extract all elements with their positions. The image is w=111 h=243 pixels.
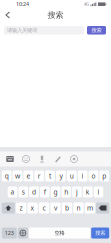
button[interactable]: h [61, 186, 71, 197]
button[interactable]: Voice input [34, 151, 50, 166]
button[interactable]: Keyboard layout [2, 151, 18, 166]
staticText: j [76, 188, 78, 196]
button[interactable]: z [16, 202, 26, 213]
staticText: g [53, 188, 57, 196]
button[interactable]: n [73, 202, 84, 213]
staticText: k [86, 188, 90, 196]
staticText: r [38, 172, 41, 180]
button[interactable]: r [34, 170, 44, 181]
button[interactable]: s [18, 186, 28, 197]
staticText: u [70, 172, 74, 180]
staticText: i [82, 172, 84, 180]
staticText: 10:24 [16, 0, 29, 8]
button[interactable]: y [56, 170, 66, 181]
button[interactable]: 搜索 [87, 26, 106, 34]
staticText: y [59, 172, 62, 180]
staticText: w [15, 172, 20, 180]
button[interactable]: v [50, 202, 61, 213]
button[interactable]: q [2, 170, 12, 181]
staticText: m [87, 204, 93, 212]
button[interactable]: i [78, 170, 87, 181]
button[interactable]: d [29, 186, 39, 197]
button[interactable]: m [85, 202, 95, 213]
button[interactable]: Shift [2, 202, 15, 213]
staticText: d [32, 188, 36, 196]
button[interactable]: f [40, 186, 49, 197]
staticText: q [5, 172, 9, 180]
button[interactable]: g [51, 186, 60, 197]
button[interactable]: k [83, 186, 92, 197]
staticText: f [44, 188, 46, 196]
staticText: b [65, 204, 69, 212]
button[interactable]: b [62, 202, 72, 213]
staticText: 请输入关键词 [7, 27, 37, 34]
button[interactable]: w [13, 170, 22, 181]
staticText: n [76, 204, 80, 212]
staticText: c [42, 204, 45, 212]
staticText: 搜索 [47, 10, 63, 20]
staticText: 123 [5, 229, 14, 237]
button[interactable]: Emoji [18, 151, 34, 166]
button[interactable]: Switch keyboard [18, 227, 28, 238]
button[interactable]: Handwriting [50, 151, 66, 166]
staticText: p [102, 172, 106, 180]
button[interactable]: e [23, 170, 33, 181]
button[interactable]: x [27, 202, 38, 213]
button[interactable]: l [94, 186, 103, 197]
staticText: z [20, 204, 23, 212]
button[interactable]: a [8, 186, 17, 197]
button[interactable]: 搜索 [91, 227, 109, 238]
staticText: 搜索 [95, 230, 105, 236]
staticText: a [10, 188, 14, 196]
button[interactable]: j [72, 186, 82, 197]
button[interactable]: Back [0, 8, 16, 22]
staticText: t [49, 172, 51, 180]
button[interactable]: Delete [96, 202, 109, 213]
button[interactable]: t [45, 170, 55, 181]
staticText: e [26, 172, 30, 180]
staticText: 4G [84, 1, 89, 7]
staticText: x [31, 204, 35, 212]
button[interactable]: c [39, 202, 49, 213]
staticText: l [97, 188, 99, 196]
button[interactable]: u [67, 170, 77, 181]
button[interactable]: o [89, 170, 98, 181]
staticText: s [22, 188, 25, 196]
staticText: o [91, 172, 95, 180]
staticText: v [54, 204, 57, 212]
staticText: h [64, 188, 68, 196]
button[interactable]: 123 [2, 227, 17, 238]
button[interactable]: 空格 [29, 227, 90, 238]
staticText: 搜索 [91, 27, 101, 34]
staticText: 空格 [55, 230, 65, 236]
button[interactable]: p [99, 170, 109, 181]
button[interactable]: Settings [66, 151, 82, 166]
